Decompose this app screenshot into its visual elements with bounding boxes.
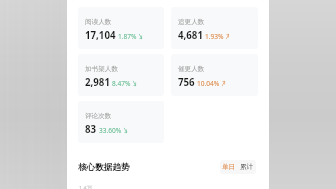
staticText: 2,981 <box>85 76 110 89</box>
staticText: 1.87% <box>118 32 137 41</box>
staticText: 83 <box>85 123 97 136</box>
staticText: 1.4万 <box>79 184 93 189</box>
staticText: 33.60% <box>99 126 122 135</box>
staticText: 核心数据趋势 <box>78 162 130 173</box>
button[interactable]: 评论次数 <box>78 101 164 143</box>
staticText: 756 <box>178 76 195 89</box>
button[interactable]: 追更人数 <box>171 7 258 49</box>
staticText: 追更人数 <box>178 18 205 26</box>
staticText: 评论次数 <box>85 112 112 120</box>
button[interactable]: 催更人数 <box>171 54 258 96</box>
button[interactable]: 单日 <box>221 161 237 173</box>
button[interactable]: 加书架人数 <box>78 54 164 96</box>
staticText: 加书架人数 <box>85 65 118 73</box>
button[interactable]: 累计 <box>239 161 255 173</box>
staticText: 17,104 <box>85 29 116 42</box>
staticText: 1.93% <box>205 32 224 41</box>
staticText: 累计 <box>240 163 254 171</box>
staticText: 催更人数 <box>178 65 205 73</box>
button[interactable]: 阅读人数 <box>78 7 164 49</box>
staticText: 阅读人数 <box>85 18 112 26</box>
staticText: 10.04% <box>197 79 220 88</box>
staticText: 4,681 <box>178 29 203 42</box>
staticText: 单日 <box>222 163 236 171</box>
staticText: 8.47% <box>112 79 131 88</box>
